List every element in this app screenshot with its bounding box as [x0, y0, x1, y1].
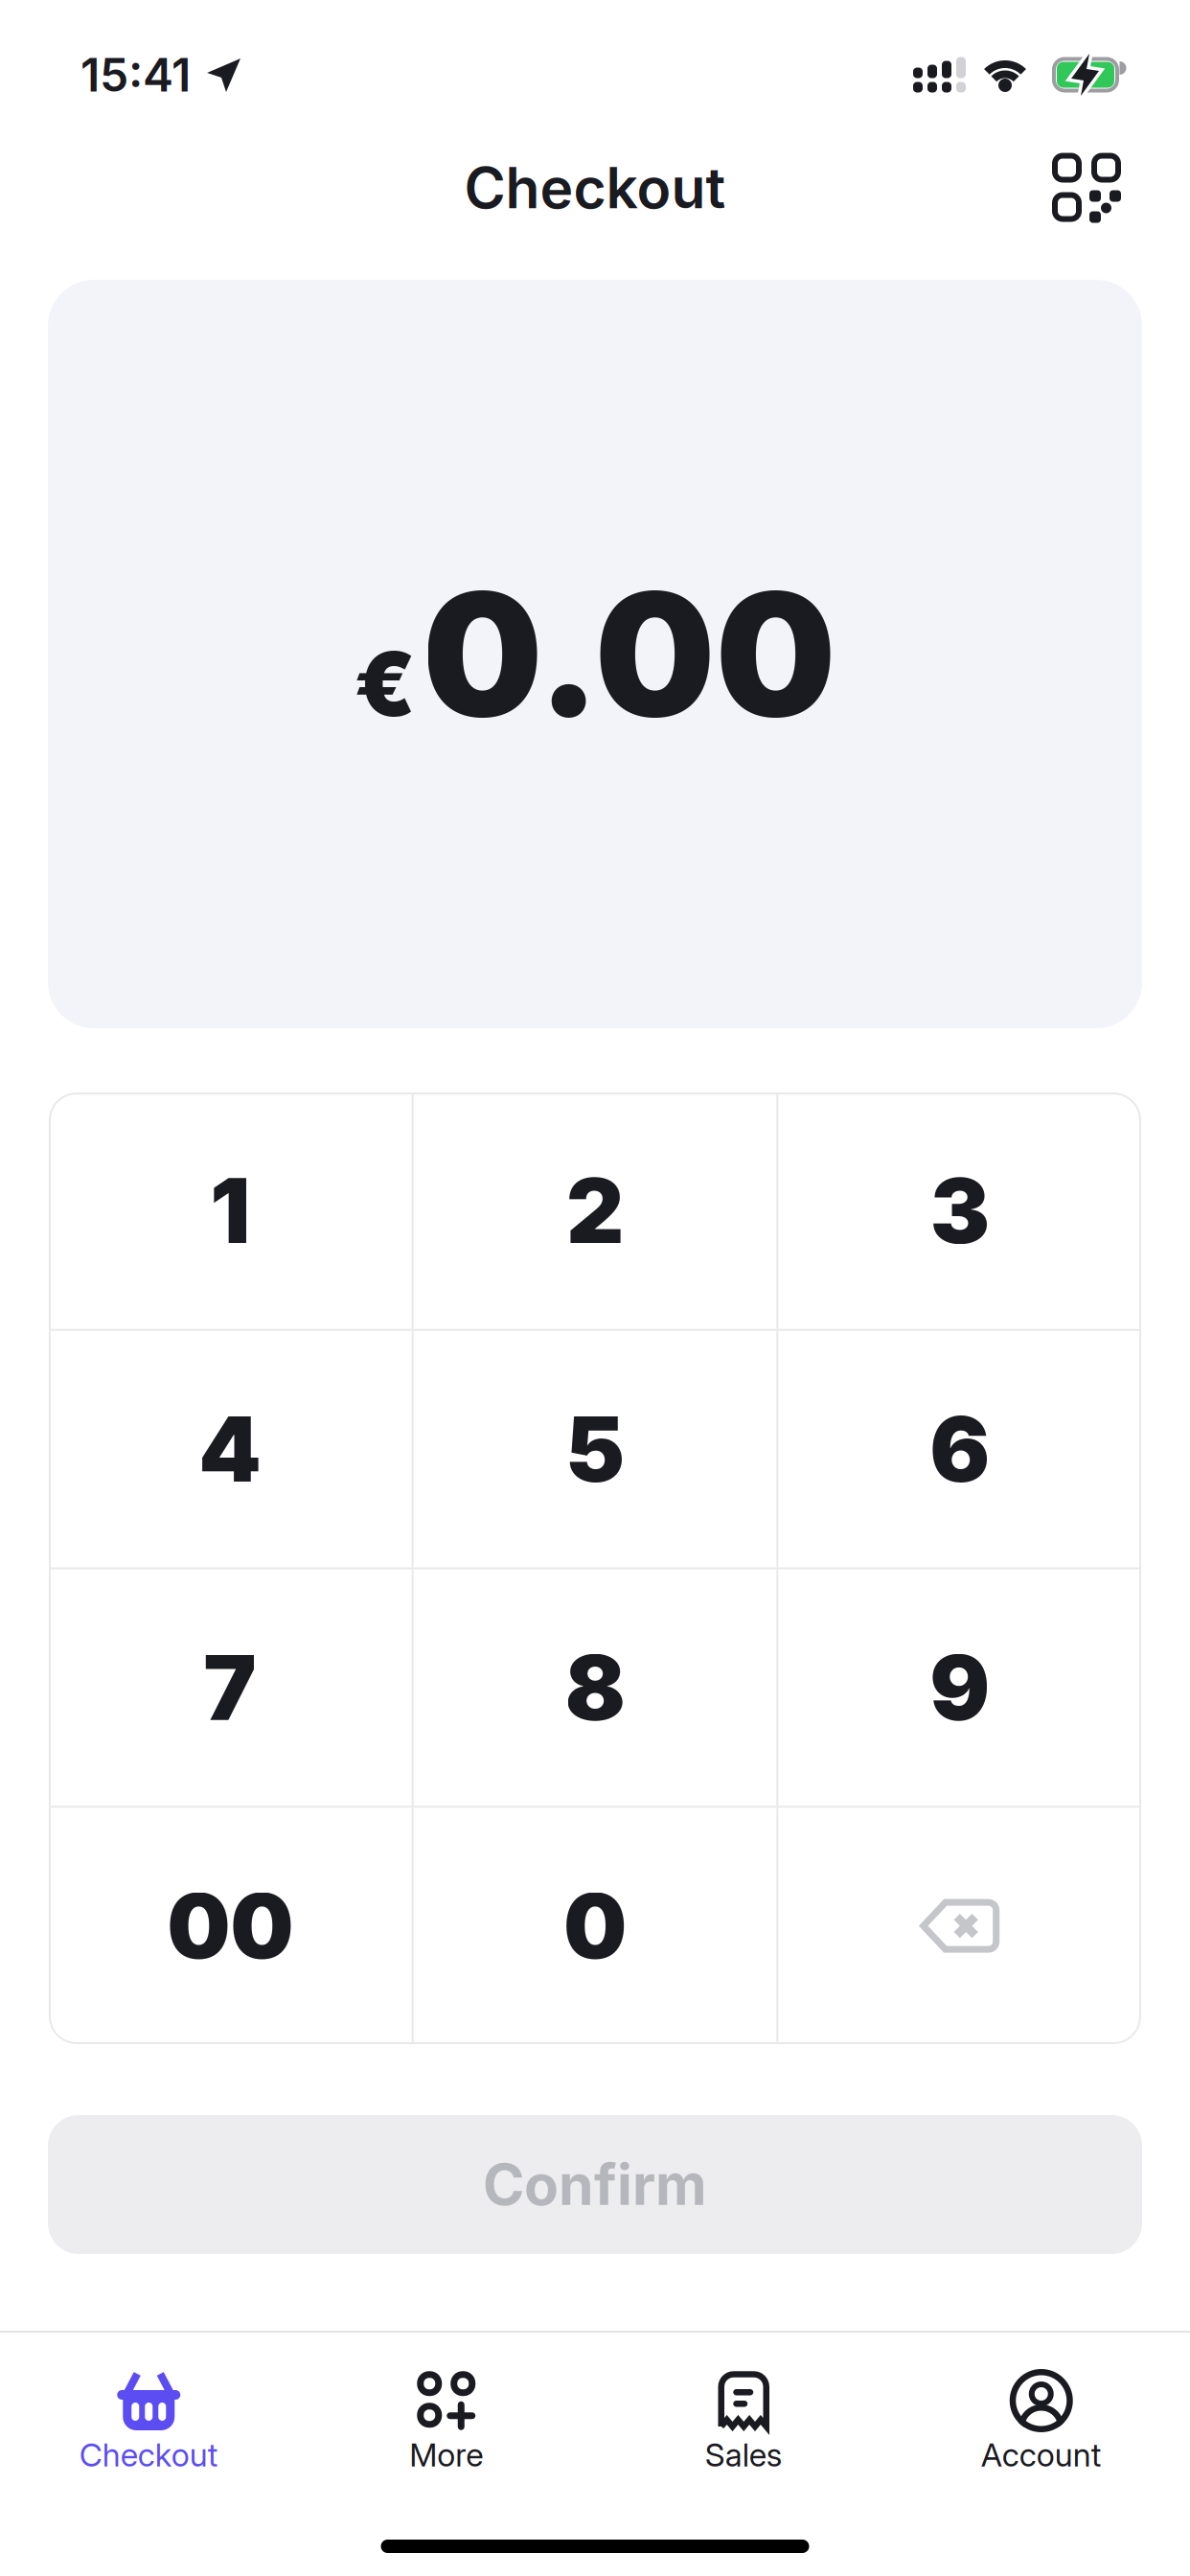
- button[interactable]: Delete: [778, 1808, 1141, 2044]
- staticText: Sales: [705, 2436, 783, 2474]
- staticText: 4: [199, 1396, 262, 1502]
- staticText: 6: [930, 1396, 990, 1502]
- button[interactable]: 1: [49, 1092, 412, 1329]
- staticText: 5: [565, 1396, 625, 1502]
- button[interactable]: 7: [49, 1569, 412, 1806]
- staticText: Checkout: [79, 2436, 218, 2474]
- staticText: 8: [565, 1635, 625, 1740]
- button[interactable]: 4: [49, 1331, 412, 1567]
- button[interactable]: 0: [414, 1808, 776, 2044]
- button[interactable]: 00: [49, 1808, 412, 2044]
- button[interactable]: Scan QR code: [1052, 153, 1121, 222]
- button[interactable]: Account: [892, 2369, 1190, 2474]
- staticText: 7: [203, 1635, 257, 1740]
- button[interactable]: 3: [778, 1092, 1141, 1329]
- button[interactable]: Checkout: [0, 2369, 297, 2474]
- staticText: Checkout: [464, 155, 726, 221]
- staticText: 2: [566, 1158, 624, 1263]
- staticText: 0.00: [422, 554, 836, 754]
- staticText: 9: [930, 1635, 990, 1740]
- staticText: Confirm: [483, 2151, 707, 2218]
- staticText: €: [354, 632, 415, 736]
- staticText: 1: [210, 1158, 250, 1263]
- staticText: 3: [930, 1158, 989, 1263]
- button[interactable]: Confirm: [48, 2115, 1142, 2254]
- staticText: 00: [167, 1873, 293, 1979]
- button[interactable]: 8: [414, 1569, 776, 1806]
- button[interactable]: 2: [414, 1092, 776, 1329]
- button[interactable]: Sales: [595, 2369, 892, 2474]
- staticText: 15:41: [80, 48, 191, 102]
- button[interactable]: 9: [778, 1569, 1141, 1806]
- staticText: More: [409, 2436, 483, 2474]
- button[interactable]: 6: [778, 1331, 1141, 1567]
- button[interactable]: 5: [414, 1331, 776, 1567]
- button[interactable]: More: [297, 2369, 595, 2474]
- staticText: Account: [981, 2436, 1102, 2474]
- staticText: 0: [563, 1873, 627, 1979]
